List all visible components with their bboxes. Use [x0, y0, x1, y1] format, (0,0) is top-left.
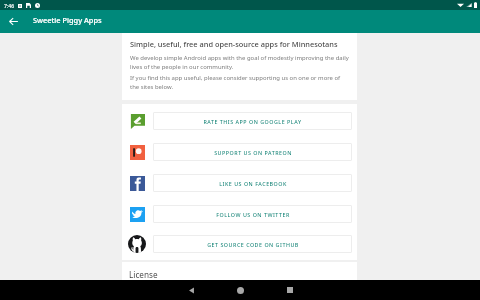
button[interactable]: Recent apps [265, 280, 314, 300]
button[interactable]: Navigate up [2, 10, 25, 33]
button[interactable]: Home [216, 280, 265, 300]
staticText: Sweetie Piggy Apps [33, 15, 102, 25]
button[interactable]: Back [167, 280, 216, 300]
button[interactable]: GET SOURCE CODE ON GITHUB [122, 229, 357, 259]
staticText: FOLLOW US ON TWITTER [216, 211, 290, 218]
staticText: Simple, useful, free and open-source app… [130, 39, 338, 49]
staticText: GET SOURCE CODE ON GITHUB [207, 241, 299, 248]
staticText: If you find this app useful, please cons… [130, 74, 350, 90]
staticText: License [129, 269, 158, 280]
staticText: We develop simple Android apps with the … [130, 54, 350, 70]
button[interactable]: SUPPORT US ON PATREON [122, 136, 357, 167]
staticText: 7:46 [4, 2, 15, 9]
staticText: SUPPORT US ON PATREON [214, 149, 292, 156]
staticText: RATE THIS APP ON GOOGLE PLAY [203, 118, 302, 125]
button[interactable]: FOLLOW US ON TWITTER [122, 198, 357, 229]
staticText: LIKE US ON FACEBOOK [219, 180, 287, 187]
button[interactable]: LIKE US ON FACEBOOK [122, 167, 357, 198]
button[interactable]: RATE THIS APP ON GOOGLE PLAY [122, 105, 357, 136]
